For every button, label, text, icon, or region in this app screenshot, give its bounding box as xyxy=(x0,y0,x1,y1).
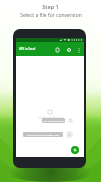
button[interactable]: Avatar xyxy=(68,118,73,123)
button[interactable]: Avatar xyxy=(66,131,73,138)
button[interactable]: More options xyxy=(76,47,82,53)
button[interactable]: Can I convert this? xyxy=(42,118,65,123)
staticText: Select a file for conversion xyxy=(20,12,82,19)
staticText: Step 1 xyxy=(42,3,59,11)
button[interactable]: Select your file to begin here xyxy=(23,132,63,137)
staticText: Select your file to begin here xyxy=(27,133,60,136)
staticText: no file selected yet xyxy=(38,116,63,120)
button[interactable]: Help xyxy=(65,46,72,53)
staticText: APK to Excel xyxy=(19,47,36,51)
button[interactable]: Save file xyxy=(54,46,61,53)
staticText: Can I convert this? xyxy=(43,119,64,122)
button[interactable]: Add file xyxy=(71,146,79,154)
